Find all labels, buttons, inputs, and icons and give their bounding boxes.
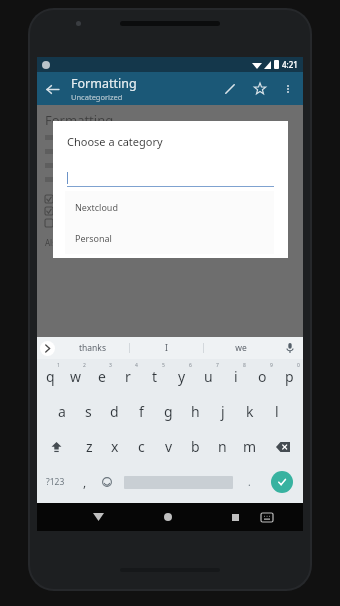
- button[interactable]: [67, 169, 274, 187]
- button[interactable]: 3: [89, 359, 115, 394]
- button[interactable]: thanks: [55, 337, 129, 359]
- staticText: f: [139, 402, 144, 421]
- button[interactable]: Emoji: [95, 464, 119, 500]
- staticText: m: [243, 437, 257, 456]
- staticText: 4:21: [282, 59, 298, 70]
- button[interactable]: h: [182, 394, 209, 429]
- button[interactable]: ,: [74, 464, 95, 500]
- button[interactable]: d: [101, 394, 128, 429]
- button[interactable]: c: [128, 429, 155, 464]
- button[interactable]: Test 2: [45, 205, 81, 217]
- button[interactable]: 2: [63, 359, 89, 394]
- staticText: ?123: [46, 476, 65, 488]
- staticText: I: [165, 342, 168, 354]
- staticText: c: [138, 437, 145, 456]
- button[interactable]: Space: [119, 464, 237, 500]
- button[interactable]: 6: [168, 359, 195, 394]
- button[interactable]: 9: [249, 359, 276, 394]
- staticText: e: [98, 367, 106, 386]
- button[interactable]: l: [263, 394, 290, 429]
- button[interactable]: Test 3: [45, 217, 81, 229]
- button[interactable]: Favorite: [245, 74, 275, 104]
- button[interactable]: b: [182, 429, 209, 464]
- staticText: 5: [162, 362, 165, 369]
- button[interactable]: 1: [37, 359, 63, 394]
- button[interactable]: Back: [37, 74, 67, 104]
- staticText: z: [86, 437, 93, 456]
- button[interactable]: 5: [141, 359, 168, 394]
- staticText: thanks: [79, 342, 106, 354]
- staticText: 1: [57, 362, 60, 369]
- button[interactable]: Hide keyboard: [81, 503, 115, 531]
- button[interactable]: 7: [195, 359, 222, 394]
- button[interactable]: x: [102, 429, 128, 464]
- staticText: Formatting: [71, 75, 137, 92]
- staticText: u: [204, 367, 213, 386]
- staticText: 0: [297, 362, 300, 369]
- staticText: g: [164, 402, 173, 421]
- button[interactable]: Switch keyboard: [251, 503, 282, 531]
- staticText: a: [58, 402, 66, 421]
- staticText: q: [46, 367, 55, 386]
- staticText: Google: [95, 237, 122, 248]
- staticText: Formatting: [45, 111, 114, 129]
- button[interactable]: Done: [261, 464, 303, 500]
- button[interactable]: 8: [222, 359, 249, 394]
- staticText: Choose a category: [67, 134, 163, 149]
- button[interactable]: Home: [150, 503, 185, 531]
- button[interactable]: z: [76, 429, 102, 464]
- staticText: l: [275, 402, 279, 421]
- button[interactable]: More options: [275, 76, 301, 102]
- staticText: o: [258, 367, 267, 386]
- button[interactable]: m: [236, 429, 263, 464]
- staticText: v: [165, 437, 173, 456]
- button[interactable]: k: [236, 394, 263, 429]
- button[interactable]: Edit: [215, 74, 245, 104]
- staticText: Also a link to: [45, 237, 95, 248]
- staticText: 9: [270, 362, 273, 369]
- button[interactable]: Test 1: [45, 193, 81, 205]
- button[interactable]: Shift: [37, 429, 76, 464]
- staticText: 6: [189, 362, 192, 369]
- button[interactable]: j: [209, 394, 236, 429]
- button[interactable]: Voice input: [277, 337, 303, 359]
- staticText: 4: [135, 362, 138, 369]
- button[interactable]: Backspace: [263, 429, 303, 464]
- staticText: t: [152, 367, 158, 386]
- staticText: Test 1: [57, 193, 81, 205]
- button[interactable]: ?123: [37, 464, 74, 500]
- staticText: k: [246, 402, 254, 421]
- button[interactable]: .: [237, 464, 261, 500]
- button[interactable]: I: [130, 337, 203, 359]
- button[interactable]: a: [49, 394, 75, 429]
- button[interactable]: g: [155, 394, 182, 429]
- staticText: r: [125, 367, 131, 386]
- button[interactable]: s: [75, 394, 101, 429]
- staticText: 2: [83, 362, 86, 369]
- staticText: .: [248, 475, 251, 489]
- staticText: x: [111, 437, 119, 456]
- button[interactable]: Personal: [65, 222, 274, 253]
- button[interactable]: 4: [115, 359, 141, 394]
- button[interactable]: we: [204, 337, 277, 359]
- staticText: d: [110, 402, 119, 421]
- staticText: j: [221, 402, 225, 421]
- staticText: Test 2: [57, 205, 81, 217]
- staticText: w: [70, 367, 82, 386]
- staticText: 3: [109, 362, 112, 369]
- button[interactable]: Nextcloud: [65, 191, 274, 222]
- staticText: y: [178, 367, 186, 386]
- button[interactable]: v: [155, 429, 182, 464]
- staticText: p: [285, 367, 294, 386]
- button[interactable]: n: [209, 429, 236, 464]
- button[interactable]: f: [128, 394, 155, 429]
- staticText: we: [235, 342, 247, 354]
- staticText: b: [191, 437, 200, 456]
- button[interactable]: Expand suggestions: [40, 341, 55, 356]
- button[interactable]: 0: [276, 359, 303, 394]
- staticText: Nextcloud: [75, 201, 118, 213]
- button[interactable]: Recents: [220, 503, 251, 531]
- staticText: n: [218, 437, 227, 456]
